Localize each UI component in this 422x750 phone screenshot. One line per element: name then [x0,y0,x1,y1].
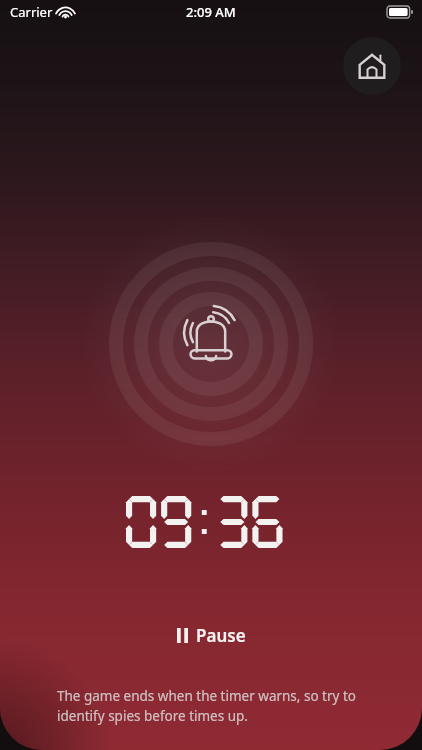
staticText: 2:09 AM [186,3,236,21]
button[interactable]: Home [343,37,401,95]
staticText: Pause [196,624,246,647]
staticText: Carrier [10,3,53,21]
staticText: The game ends when the timer warns, so t… [57,687,380,725]
button[interactable]: Pause [167,619,256,652]
